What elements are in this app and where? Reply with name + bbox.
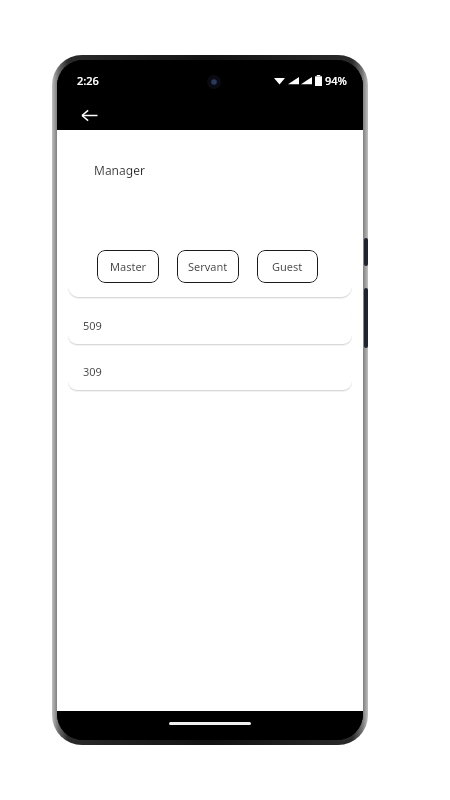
button[interactable]: 309 (68, 353, 352, 390)
staticText: Master (110, 259, 147, 274)
staticText: Servant (188, 259, 228, 274)
button[interactable]: 509 (68, 307, 352, 344)
staticText: 94% (325, 73, 347, 88)
staticText: Guest (272, 259, 303, 274)
staticText: 509 (83, 318, 102, 333)
button[interactable]: Back (73, 100, 105, 130)
staticText: 309 (83, 364, 102, 379)
staticText: 2:26 (77, 73, 99, 88)
staticText: Manager (94, 162, 145, 178)
button[interactable]: Servant (177, 250, 239, 283)
button[interactable]: Guest (257, 250, 318, 283)
button[interactable]: Master (97, 250, 159, 283)
